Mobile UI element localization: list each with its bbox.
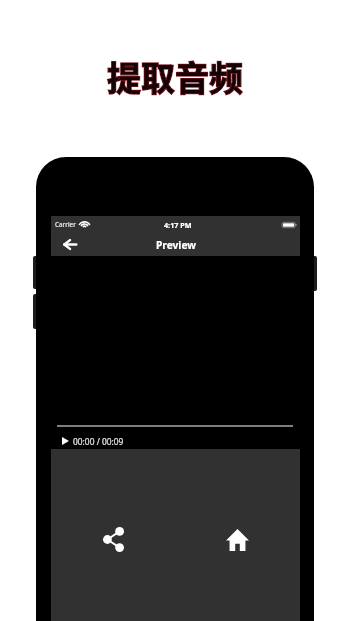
staticText: Carrier bbox=[55, 220, 76, 229]
button[interactable]: Home bbox=[217, 519, 258, 560]
staticText: 4:17 PM bbox=[164, 220, 192, 230]
staticText: 提取音频 bbox=[107, 52, 243, 101]
staticText: Preview bbox=[156, 238, 197, 252]
staticText: 提取音频 bbox=[107, 52, 243, 101]
staticText: 00:00 / 00:09 bbox=[73, 436, 124, 447]
button[interactable]: Share bbox=[93, 519, 134, 560]
button[interactable]: Back bbox=[51, 233, 89, 256]
